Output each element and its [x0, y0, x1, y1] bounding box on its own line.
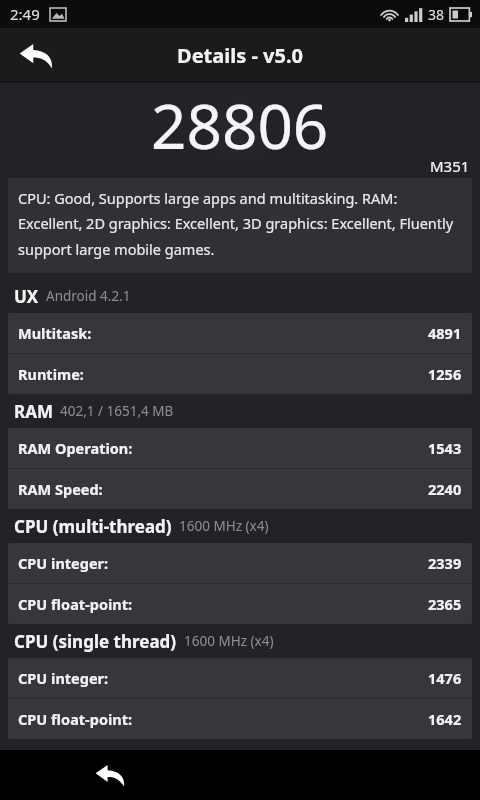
staticText: CPU integer: — [18, 553, 109, 573]
button[interactable]: CPU integer: — [8, 658, 472, 698]
staticText: 402,1 / 1651,4 MB — [60, 402, 174, 420]
staticText: RAM Operation: — [18, 438, 133, 458]
staticText: 2339 — [428, 553, 462, 573]
staticText: CPU float-point: — [18, 709, 133, 729]
staticText: 1256 — [428, 364, 462, 384]
staticText: 28806 — [151, 83, 329, 166]
button[interactable]: RAM Speed: — [8, 469, 472, 509]
button[interactable]: Multitask: — [8, 313, 472, 353]
staticText: Runtime: — [18, 364, 84, 384]
staticText: 2240 — [428, 479, 462, 499]
staticText: 2:49 — [10, 4, 40, 24]
button[interactable]: CPU float-point: — [8, 699, 472, 739]
button[interactable]: CPU integer: — [8, 543, 472, 583]
staticText: 1642 — [428, 709, 462, 729]
staticText: 4891 — [428, 323, 462, 343]
staticText: UX — [14, 285, 39, 308]
button[interactable]: RAM Operation: — [8, 428, 472, 468]
staticText: 1600 MHz (x4) — [184, 632, 274, 650]
staticText: CPU (multi-thread) — [14, 515, 172, 538]
staticText: CPU float-point: — [18, 594, 133, 614]
staticText: RAM Speed: — [18, 479, 103, 499]
staticText: 1543 — [428, 438, 462, 458]
staticText: Details - v5.0 — [177, 42, 303, 69]
button[interactable]: Back — [0, 28, 72, 83]
staticText: Multitask: — [18, 323, 92, 343]
staticText: 1600 MHz (x4) — [179, 517, 269, 535]
staticText: 1476 — [428, 668, 462, 688]
staticText: M351 — [430, 156, 470, 176]
staticText: CPU (single thread) — [14, 630, 177, 653]
button[interactable]: Back — [82, 750, 138, 800]
button[interactable]: CPU float-point: — [8, 584, 472, 624]
staticText: 2365 — [428, 594, 462, 614]
staticText: RAM — [14, 400, 53, 423]
staticText: 38 — [428, 5, 445, 24]
staticText: Android 4.2.1 — [46, 287, 131, 305]
staticText: CPU integer: — [18, 668, 109, 688]
staticText: CPU: Good, Supports large apps and multi… — [18, 188, 462, 260]
button[interactable]: Runtime: — [8, 354, 472, 394]
